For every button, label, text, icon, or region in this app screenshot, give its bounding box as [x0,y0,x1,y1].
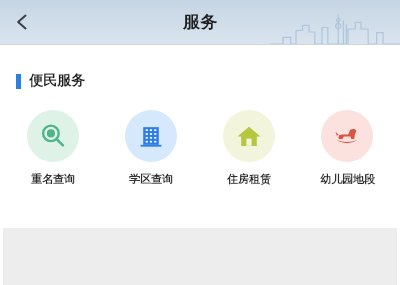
button[interactable]: 重名查询 [4,110,102,186]
button[interactable]: Back [0,0,44,44]
staticText: 学区查询 [129,172,173,186]
staticText: 重名查询 [31,172,75,186]
button[interactable]: 住房租赁 [200,110,298,186]
staticText: 便民服务 [29,72,85,90]
button[interactable]: 学区查询 [102,110,200,186]
button[interactable]: 幼儿园地段 [298,110,396,186]
staticText: 服务 [183,12,217,33]
staticText: 幼儿园地段 [320,172,375,186]
staticText: 住房租赁 [227,172,271,186]
